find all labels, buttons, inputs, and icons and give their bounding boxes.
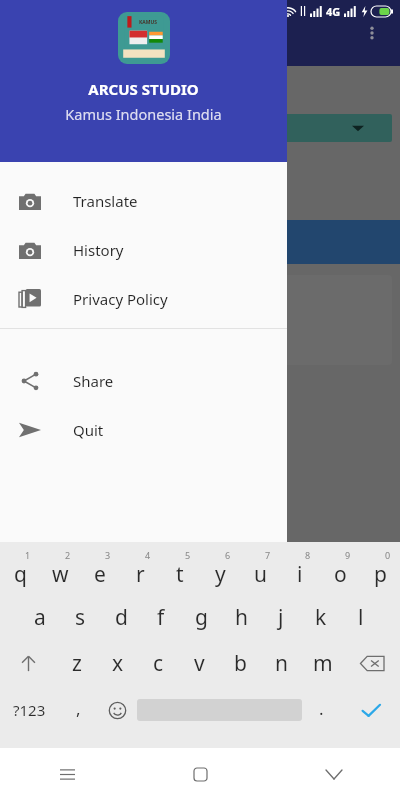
staticText: x xyxy=(112,649,124,678)
button[interactable]: Enter xyxy=(341,686,400,734)
staticText: KAMUS xyxy=(139,19,158,26)
button[interactable]: Quit xyxy=(0,405,287,454)
button[interactable]: Translate xyxy=(0,176,287,225)
button[interactable]: b xyxy=(220,640,261,686)
staticText: 4G xyxy=(326,4,341,19)
staticText: 0 xyxy=(385,549,391,561)
button[interactable]: d xyxy=(101,594,141,640)
staticText: . xyxy=(319,697,324,720)
button[interactable]: Emoji xyxy=(98,686,137,734)
staticText: ?123 xyxy=(13,700,46,720)
button[interactable]: Home xyxy=(134,748,267,800)
staticText: r xyxy=(136,560,145,589)
staticText: m xyxy=(313,649,333,678)
staticText: y xyxy=(215,560,226,589)
button[interactable]: r xyxy=(120,548,160,594)
button[interactable]: w xyxy=(40,548,80,594)
staticText: Quit xyxy=(73,420,104,440)
button[interactable]: q xyxy=(0,548,40,594)
button[interactable]: n xyxy=(261,640,302,686)
staticText: Kamus Indonesia India xyxy=(65,104,222,124)
button[interactable]: t xyxy=(160,548,200,594)
staticText: v xyxy=(194,649,205,678)
staticText: 2 xyxy=(65,549,71,561)
staticText: u xyxy=(254,560,267,589)
button[interactable]: Back xyxy=(267,748,400,800)
button[interactable]: s xyxy=(60,594,101,640)
staticText: h xyxy=(235,603,248,632)
staticText: Share xyxy=(73,371,114,391)
button[interactable]: m xyxy=(302,640,343,686)
staticText: 4 xyxy=(145,549,151,561)
button[interactable]: e xyxy=(80,548,120,594)
staticText: p xyxy=(374,560,387,589)
button[interactable]: Recents xyxy=(0,748,134,800)
staticText: s xyxy=(75,603,86,632)
staticText: , xyxy=(76,697,81,720)
button[interactable]: x xyxy=(97,640,138,686)
button[interactable]: Backspace xyxy=(343,640,400,686)
staticText: z xyxy=(72,649,82,678)
button[interactable]: Shift xyxy=(0,640,56,686)
button[interactable] xyxy=(16,114,392,142)
staticText: q xyxy=(14,560,27,589)
staticText: ARCUS STUDIO xyxy=(88,79,199,99)
button[interactable]: p xyxy=(360,548,400,594)
staticText: e xyxy=(94,560,106,589)
staticText: 6 xyxy=(225,549,231,561)
staticText: f xyxy=(157,603,165,632)
button[interactable]: Share xyxy=(0,356,287,405)
button[interactable]: l xyxy=(341,594,381,640)
button[interactable]: ?123 xyxy=(0,686,59,734)
button[interactable]: i xyxy=(280,548,320,594)
staticText: g xyxy=(195,603,208,632)
button[interactable]: History xyxy=(0,225,287,274)
button[interactable]: u xyxy=(240,548,280,594)
button[interactable]: Privacy Policy xyxy=(0,274,287,323)
staticText: History xyxy=(73,240,124,260)
staticText: Translate xyxy=(73,191,138,211)
button[interactable]: v xyxy=(179,640,220,686)
staticText: n xyxy=(275,649,288,678)
button[interactable]: k xyxy=(301,594,341,640)
staticText: w xyxy=(52,560,69,589)
button[interactable]: j xyxy=(261,594,301,640)
button[interactable]: . xyxy=(302,686,341,734)
staticText: c xyxy=(153,649,164,678)
button[interactable]: g xyxy=(181,594,221,640)
staticText: 3 xyxy=(105,549,111,561)
staticText: 8 xyxy=(305,549,311,561)
staticText: 9 xyxy=(345,549,351,561)
staticText: o xyxy=(334,560,347,589)
staticText: l xyxy=(358,603,364,632)
staticText: k xyxy=(315,603,327,632)
staticText: 7 xyxy=(265,549,271,561)
staticText: a xyxy=(34,603,46,632)
button[interactable]: y xyxy=(200,548,240,594)
button[interactable]: h xyxy=(221,594,261,640)
staticText: 5 xyxy=(185,549,191,561)
button[interactable]: f xyxy=(141,594,181,640)
staticText: t xyxy=(176,560,184,589)
button[interactable]: a xyxy=(19,594,60,640)
button[interactable]: z xyxy=(56,640,97,686)
staticText: i xyxy=(297,560,303,589)
button[interactable]: c xyxy=(138,640,179,686)
staticText: d xyxy=(115,603,128,632)
staticText: Privacy Policy xyxy=(73,289,168,309)
button[interactable]: o xyxy=(320,548,360,594)
button[interactable]: More options xyxy=(354,15,390,51)
button[interactable]: , xyxy=(59,686,98,734)
staticText: 1 xyxy=(25,549,31,561)
staticText: b xyxy=(234,649,247,678)
staticText: j xyxy=(278,603,284,632)
